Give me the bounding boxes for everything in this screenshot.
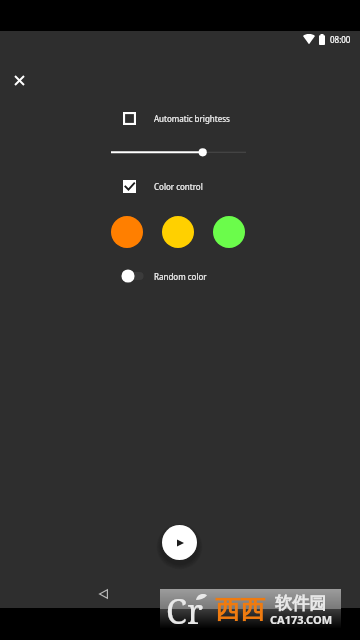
button[interactable]: Close — [7, 68, 32, 93]
staticText: 软件园 — [275, 593, 326, 614]
button[interactable]: Play — [162, 525, 197, 560]
button[interactable]: Green colour — [213, 216, 245, 248]
button[interactable]: Automatic brightess — [123, 106, 230, 130]
staticText: 西西 — [215, 594, 265, 625]
button[interactable]: Yellow colour — [162, 216, 194, 248]
staticText: Color control — [154, 181, 203, 192]
button[interactable]: Color control — [123, 175, 203, 198]
staticText: Cr — [166, 588, 203, 627]
button[interactable]: Random color — [121, 265, 207, 287]
button[interactable]: Brightness slider — [108, 144, 253, 161]
staticText: 08:00 — [330, 34, 351, 45]
staticText: CA173.COM — [270, 612, 333, 627]
button[interactable]: Orange colour — [111, 216, 143, 248]
staticText: Random color — [154, 271, 207, 282]
button[interactable]: Back — [90, 580, 117, 607]
staticText: Automatic brightess — [154, 113, 230, 124]
